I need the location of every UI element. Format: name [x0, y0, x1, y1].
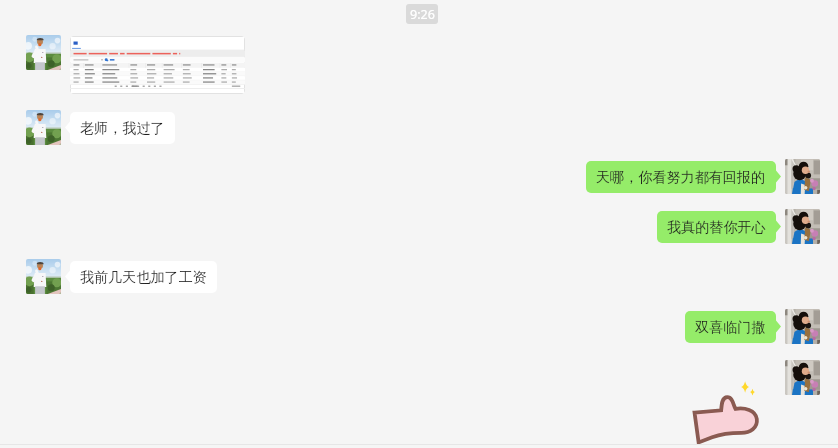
staticText: 我前几天也加了工资: [80, 268, 207, 286]
staticText: 9:26: [410, 6, 435, 23]
button[interactable]: 天哪，你看努力都有回报的: [586, 159, 781, 194]
button[interactable]: 老师，我过了: [65, 110, 175, 145]
button[interactable]: My avatar: [785, 209, 820, 244]
button[interactable]: 我真的替你开心: [657, 209, 781, 244]
button[interactable]: Contact avatar: [26, 259, 61, 294]
staticText: 老师，我过了: [80, 119, 165, 137]
staticText: 双喜临门撒: [695, 318, 766, 336]
button[interactable]: Thumbs up sticker: [690, 372, 772, 445]
button[interactable]: My avatar: [785, 159, 820, 194]
staticText: 我真的替你开心: [667, 218, 766, 236]
button[interactable]: 双喜临门撒: [685, 309, 781, 344]
button[interactable]: 我前几天也加了工资: [65, 259, 217, 294]
button[interactable]: Contact avatar: [26, 110, 61, 145]
button[interactable]: 9:26: [406, 4, 438, 24]
button[interactable]: My avatar: [785, 360, 820, 395]
button[interactable]: My avatar: [785, 309, 820, 344]
button[interactable]: [70, 36, 245, 94]
button[interactable]: Contact avatar: [26, 35, 61, 70]
staticText: 天哪，你看努力都有回报的: [596, 168, 766, 186]
